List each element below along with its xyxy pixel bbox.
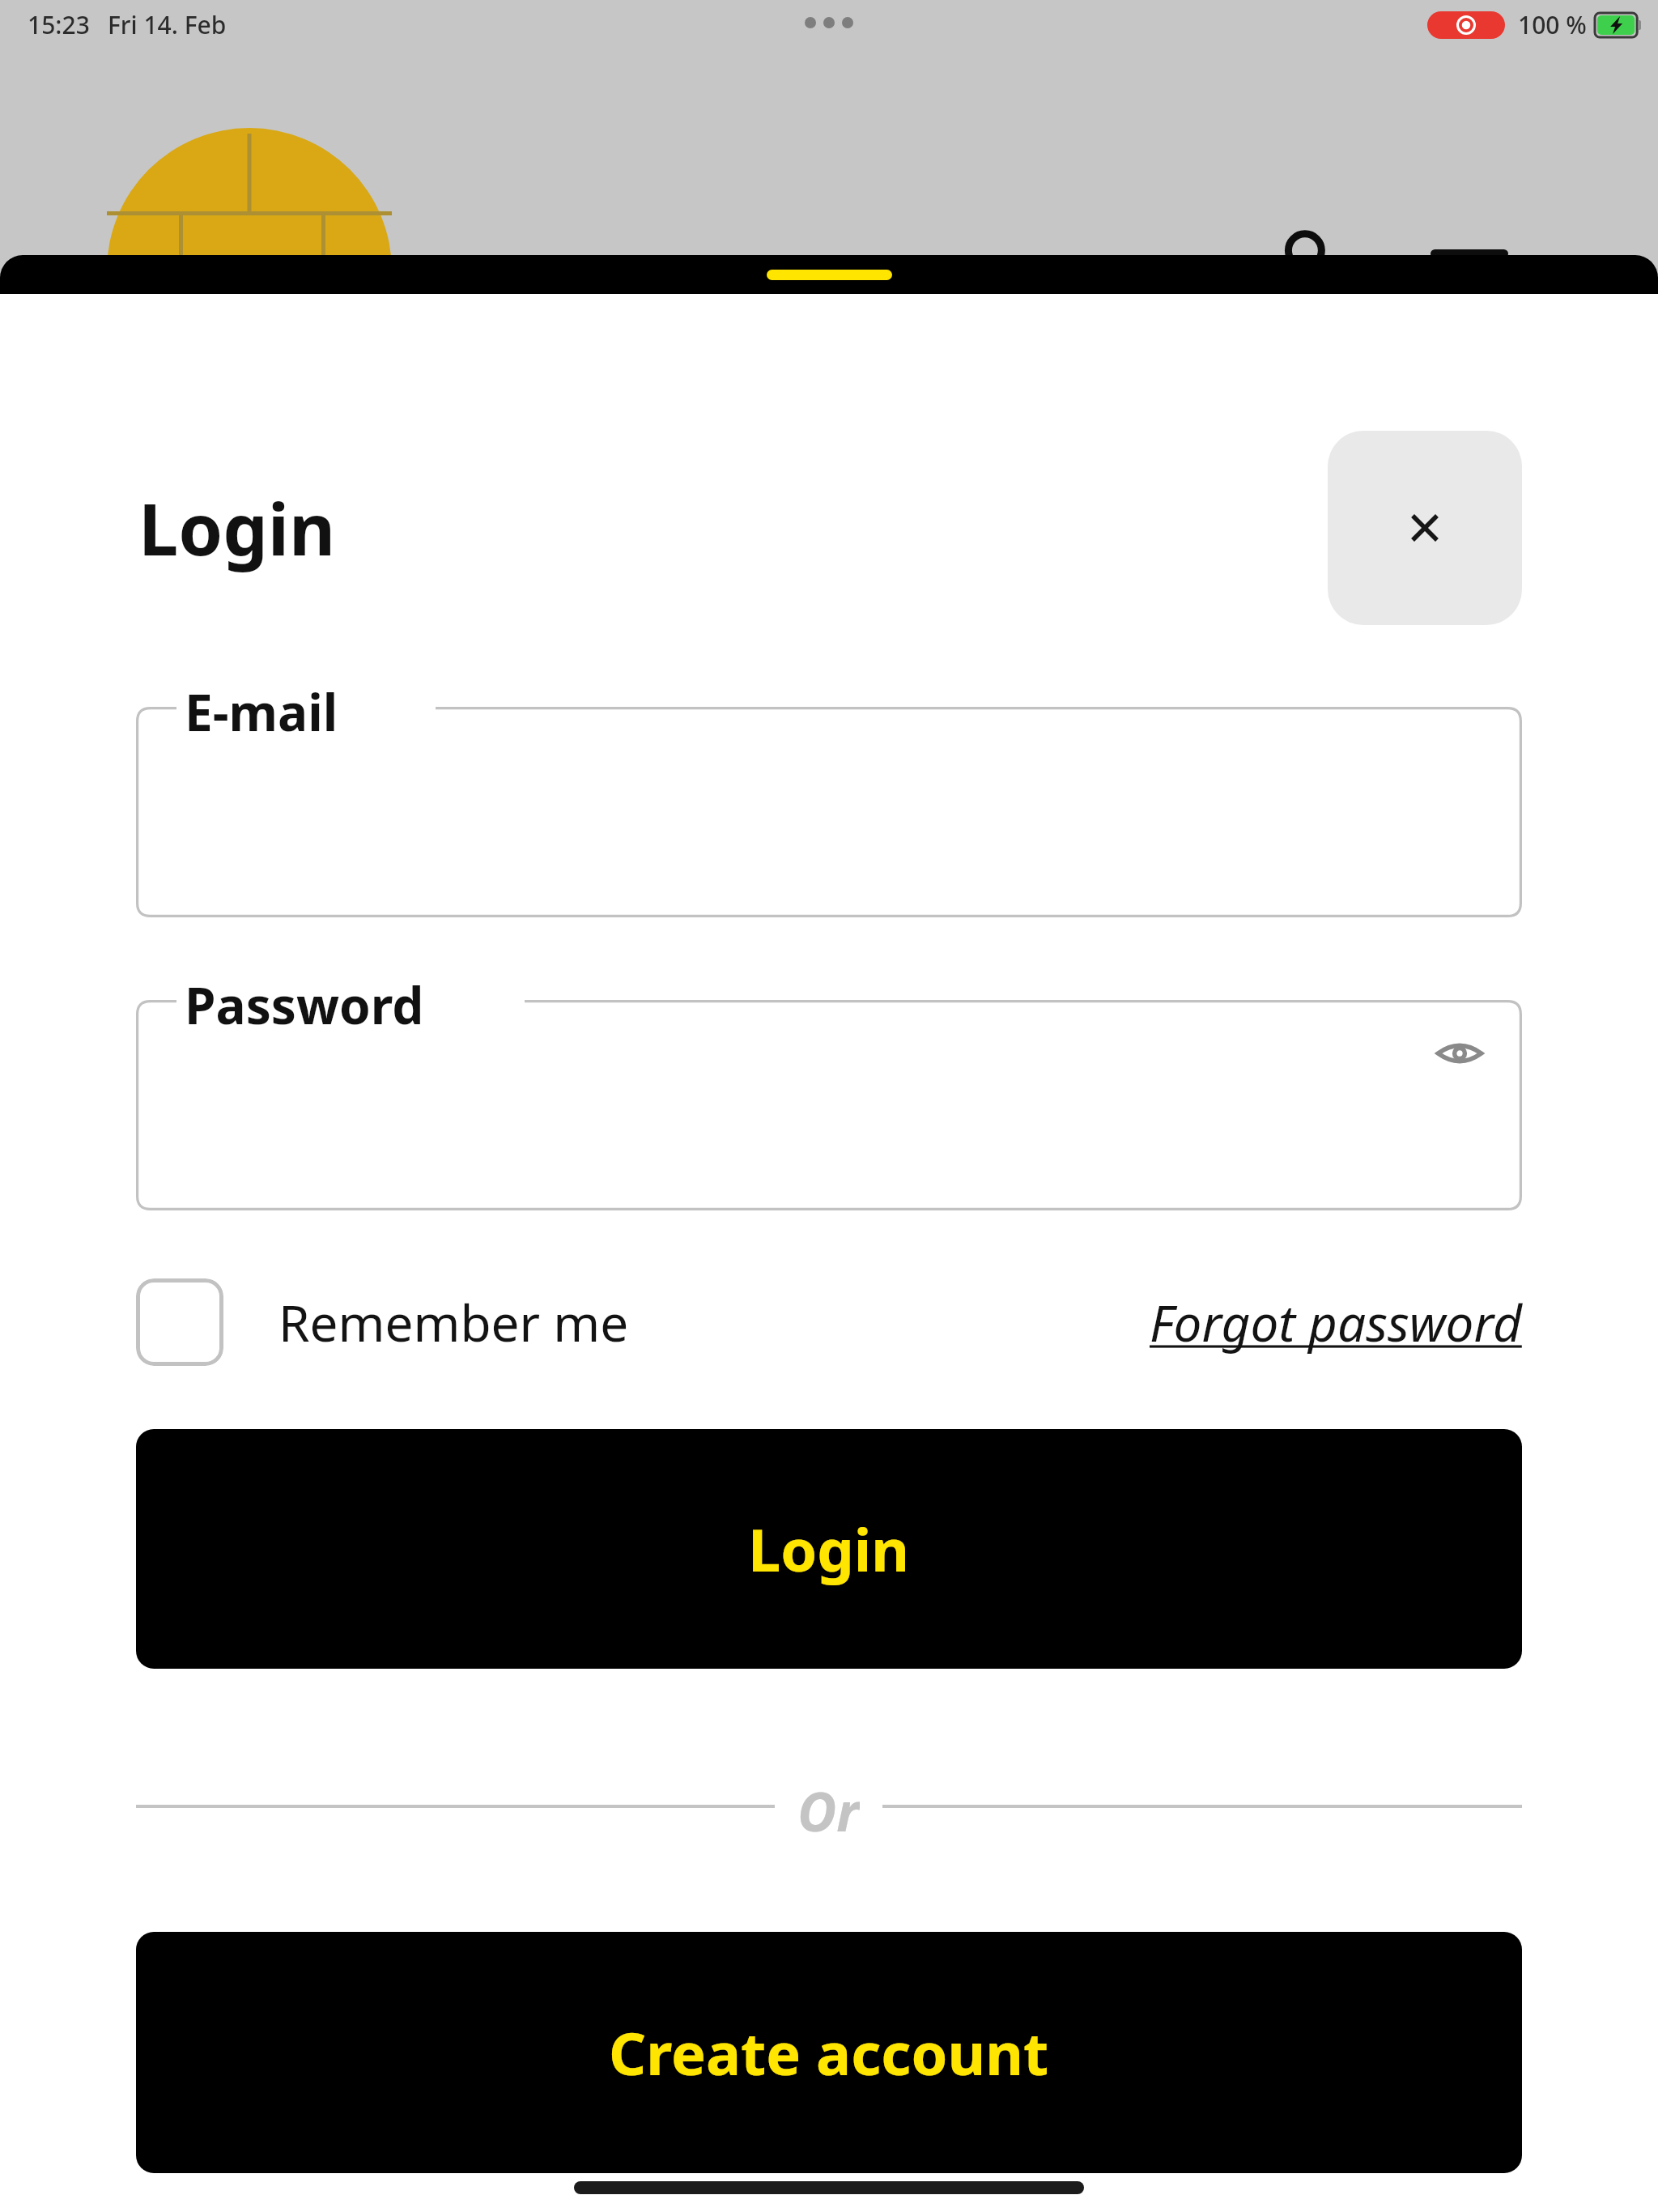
button[interactable]: Close <box>1328 431 1522 625</box>
staticText: Forgot password <box>1150 1288 1522 1356</box>
staticText: Password <box>185 971 424 1039</box>
staticText: Login <box>138 479 336 576</box>
button[interactable]: Drag handle <box>767 270 892 280</box>
button[interactable]: Remember me <box>136 1278 629 1366</box>
staticText: 100 % <box>1518 8 1587 41</box>
staticText: Login <box>748 1509 910 1589</box>
button[interactable]: Search <box>1273 220 1346 293</box>
staticText: Create account <box>609 2013 1049 2092</box>
button[interactable]: Menu <box>1425 220 1514 309</box>
button[interactable]: Password <box>136 1000 1522 1210</box>
staticText: Remember me <box>278 1288 629 1356</box>
staticText: Or <box>797 1774 860 1839</box>
button[interactable]: Create account <box>136 1932 1522 2173</box>
button[interactable]: Login <box>136 1429 1522 1669</box>
button[interactable]: E-mail <box>136 707 1522 917</box>
staticText: E-mail <box>185 678 338 746</box>
button[interactable]: Forgot password <box>1150 1288 1522 1356</box>
staticText: Fri 14. Feb <box>108 8 227 41</box>
staticText: 15:23 <box>28 8 90 41</box>
button[interactable]: Show password <box>1419 1013 1500 1094</box>
